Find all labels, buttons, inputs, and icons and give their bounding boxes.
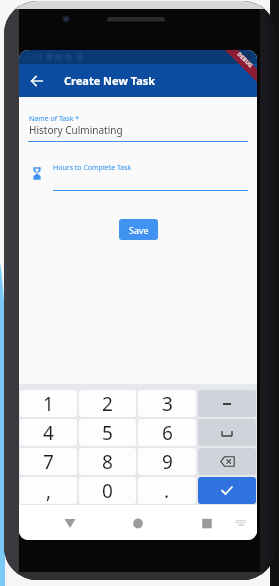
button[interactable]: 1 xyxy=(20,390,77,417)
button[interactable]: . xyxy=(138,477,196,504)
button[interactable]: 3 xyxy=(138,390,196,417)
staticText: 3 xyxy=(162,391,173,417)
staticText: 0 xyxy=(102,478,113,504)
button[interactable]: Home xyxy=(127,509,149,531)
button[interactable]: Minus xyxy=(198,390,256,417)
button[interactable]: 8 xyxy=(79,448,136,475)
button[interactable]: Enter xyxy=(198,477,256,504)
staticText: Name of Task * xyxy=(29,114,80,124)
button[interactable]: 6 xyxy=(138,419,196,446)
staticText: Hours to Complete Task xyxy=(53,163,132,173)
button[interactable]: 7 xyxy=(20,448,77,475)
button[interactable]: Space xyxy=(198,419,256,446)
staticText: Save xyxy=(129,224,149,236)
button[interactable]: 4 xyxy=(20,419,77,446)
button[interactable]: Hide keyboard xyxy=(230,509,252,531)
button[interactable]: 2 xyxy=(79,390,136,417)
staticText: 6 xyxy=(162,420,173,446)
button[interactable]: 5 xyxy=(79,419,136,446)
button[interactable]: , xyxy=(20,477,77,504)
other: Minus xyxy=(223,400,231,408)
button[interactable]: 0 xyxy=(79,477,136,504)
staticText: 1 xyxy=(43,391,54,417)
staticText: DEBUG xyxy=(236,50,255,69)
button[interactable]: Backspace xyxy=(198,448,256,475)
staticText: 9:54 xyxy=(26,52,42,63)
button[interactable]: 9 xyxy=(138,448,196,475)
other: Enter xyxy=(220,485,234,496)
staticText: , xyxy=(46,478,52,504)
staticText: 2 xyxy=(102,391,113,417)
staticText: 5 xyxy=(102,420,113,446)
staticText: 8 xyxy=(102,449,113,475)
staticText: 7 xyxy=(43,449,54,475)
button[interactable]: Back xyxy=(59,509,81,531)
staticText: Create New Task xyxy=(64,73,156,88)
button[interactable]: Save xyxy=(119,219,158,240)
button[interactable]: Recent apps xyxy=(196,509,218,531)
other: Backspace xyxy=(220,456,235,467)
staticText: . xyxy=(164,478,170,504)
staticText: 9 xyxy=(162,449,173,475)
staticText: 4 xyxy=(43,420,54,446)
button[interactable]: Back xyxy=(25,69,49,93)
staticText: History Culminating xyxy=(29,123,123,137)
other: Space xyxy=(221,429,233,437)
